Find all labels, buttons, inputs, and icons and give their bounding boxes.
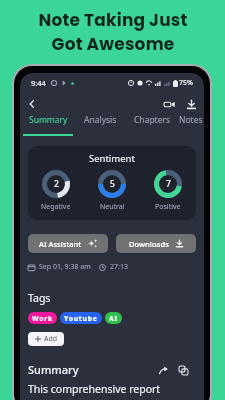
staticText: Analysis bbox=[84, 114, 117, 126]
button[interactable]: Youtube bbox=[60, 312, 102, 324]
staticText: 7 bbox=[166, 178, 171, 190]
staticText: AI bbox=[109, 314, 118, 323]
staticText: Summary bbox=[28, 362, 79, 377]
staticText: 27:13 bbox=[110, 262, 128, 272]
staticText: Got Awesome bbox=[51, 32, 175, 56]
staticText: AI Assistant bbox=[39, 239, 82, 249]
staticText: Negative bbox=[41, 202, 71, 212]
button[interactable]: Download bbox=[183, 96, 199, 112]
staticText: 2 bbox=[54, 178, 59, 190]
button[interactable]: Notes bbox=[178, 112, 204, 136]
staticText: Tags bbox=[28, 291, 51, 305]
staticText: 75% bbox=[179, 78, 193, 88]
staticText: Neutral bbox=[100, 202, 125, 212]
staticText: Work bbox=[32, 314, 53, 323]
button[interactable]: Back bbox=[24, 96, 40, 112]
button[interactable]: Copy bbox=[177, 364, 189, 376]
staticText: Positive bbox=[155, 202, 181, 212]
staticText: Sentiment bbox=[89, 152, 135, 165]
button[interactable]: Share bbox=[157, 364, 169, 376]
button[interactable]: Work bbox=[28, 312, 57, 324]
button[interactable]: Downloads bbox=[116, 234, 196, 253]
staticText: Summary bbox=[29, 114, 68, 126]
staticText: This comprehensive report bbox=[28, 382, 161, 396]
button[interactable]: Summary bbox=[22, 112, 74, 136]
button[interactable]: Add bbox=[28, 332, 64, 346]
staticText: 5 bbox=[110, 178, 115, 190]
button[interactable]: AI bbox=[105, 312, 122, 324]
staticText: Note Taking Just bbox=[38, 8, 188, 32]
button[interactable]: Record video bbox=[161, 96, 177, 112]
staticText: Youtube bbox=[64, 314, 98, 323]
staticText: Sep 01, 9:38 am bbox=[39, 262, 91, 272]
staticText: 9:44 bbox=[31, 78, 46, 88]
staticText: Add bbox=[44, 334, 58, 344]
staticText: Notes bbox=[179, 114, 203, 126]
staticText: Chapters bbox=[134, 114, 171, 126]
button[interactable]: Analysis bbox=[74, 112, 126, 136]
button[interactable]: Chapters bbox=[126, 112, 178, 136]
staticText: Downloads bbox=[129, 239, 169, 249]
button[interactable]: AI Assistant bbox=[28, 234, 108, 253]
